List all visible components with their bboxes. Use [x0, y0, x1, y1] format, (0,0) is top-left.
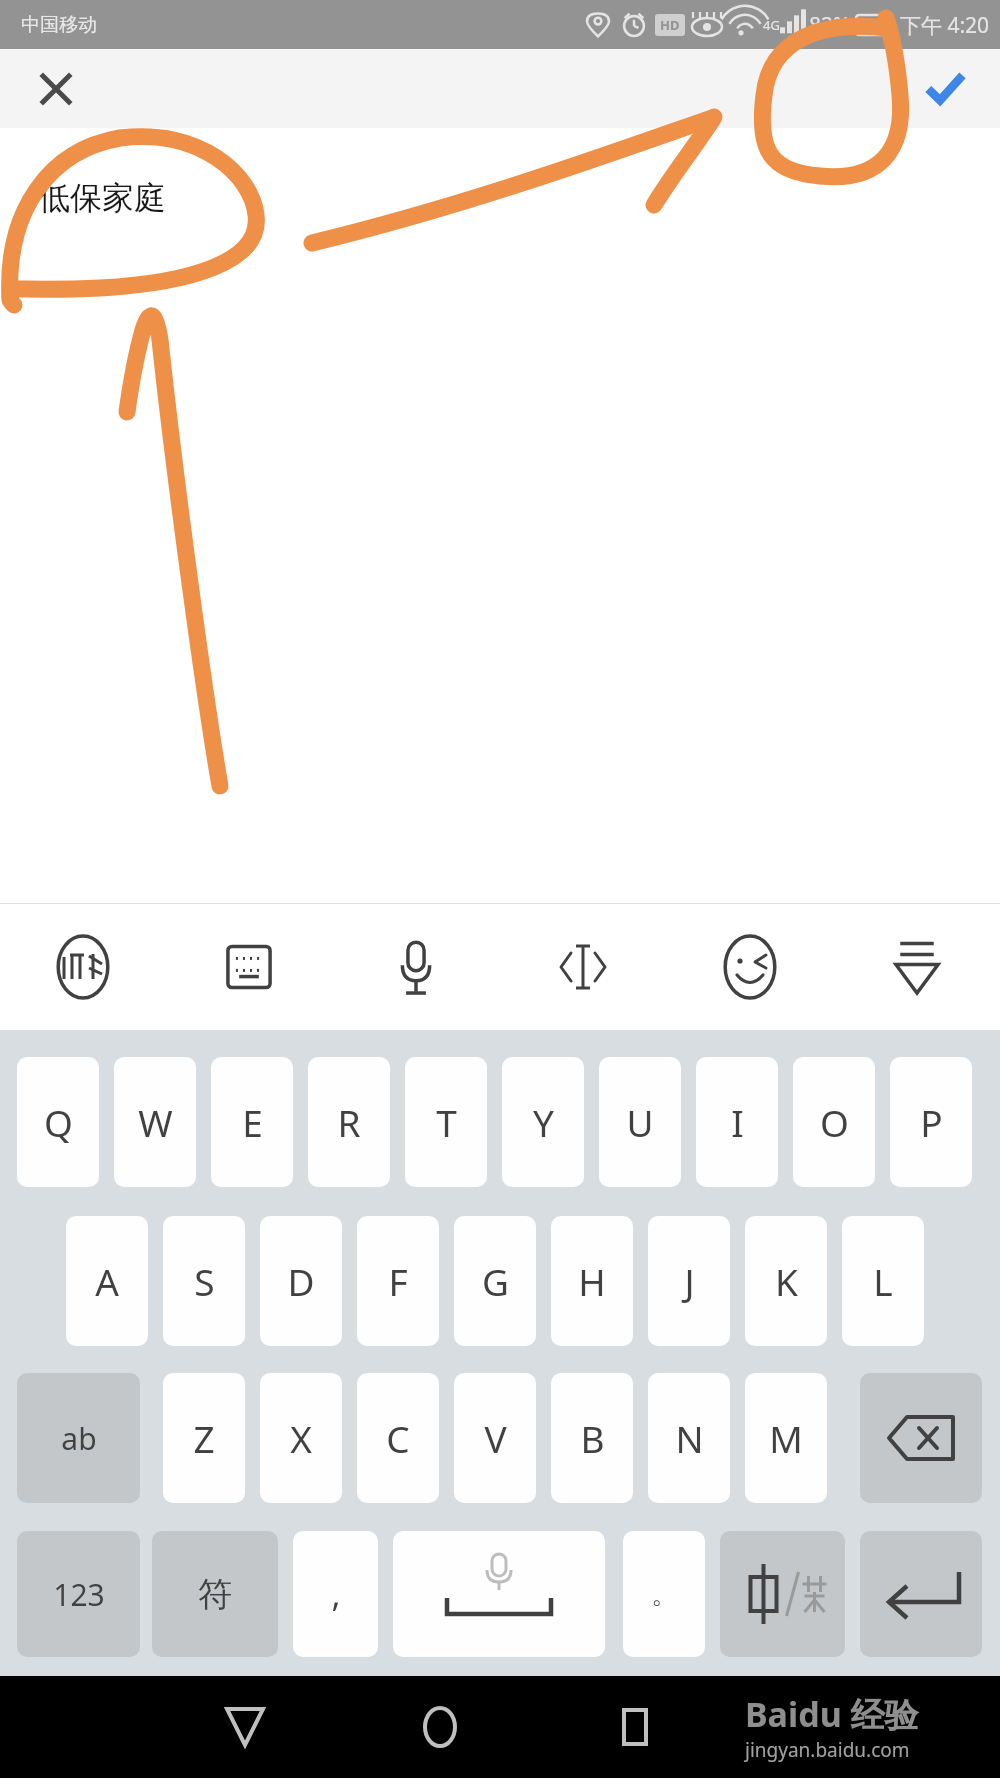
button[interactable]: 符 — [152, 1531, 278, 1657]
button[interactable]: Cursor control — [499, 904, 666, 1030]
staticText: Q — [44, 1097, 73, 1147]
button[interactable]: Z — [163, 1373, 245, 1503]
staticText: T — [436, 1097, 457, 1147]
staticText: U — [626, 1097, 654, 1147]
button[interactable]: N — [648, 1373, 730, 1503]
staticText: F — [388, 1256, 408, 1306]
staticText: J — [684, 1256, 695, 1306]
button[interactable]: R — [308, 1057, 390, 1187]
staticText: H — [578, 1256, 606, 1306]
staticText: C — [386, 1413, 410, 1463]
staticText: I — [731, 1097, 744, 1147]
button[interactable]: Y — [502, 1057, 584, 1187]
button[interactable]: Switch Chinese English — [720, 1531, 845, 1657]
button[interactable]: Input method — [0, 904, 166, 1030]
button[interactable]: Emoji — [666, 904, 833, 1030]
button[interactable]: T — [405, 1057, 487, 1187]
button[interactable]: Recents — [597, 1689, 673, 1765]
staticText: , — [331, 1571, 341, 1617]
staticText: K — [775, 1256, 798, 1306]
staticText: 中国移动 — [21, 13, 97, 37]
staticText: S — [194, 1256, 215, 1306]
button[interactable]: Q — [17, 1057, 99, 1187]
staticText: ab — [61, 1418, 97, 1459]
staticText: 符 — [198, 1573, 232, 1616]
staticText: P — [920, 1097, 943, 1147]
button[interactable]: 。 — [623, 1531, 705, 1657]
button[interactable]: W — [114, 1057, 196, 1187]
staticText: M — [769, 1413, 803, 1463]
staticText: A — [95, 1256, 119, 1306]
staticText: G — [482, 1256, 509, 1306]
staticText: R — [337, 1097, 361, 1147]
staticText: jingyan.baidu.com — [745, 1737, 910, 1763]
button[interactable]: Enter — [860, 1531, 982, 1657]
staticText: N — [675, 1413, 704, 1463]
button[interactable]: H — [551, 1216, 633, 1346]
staticText: B — [580, 1413, 605, 1463]
staticText: E — [242, 1097, 263, 1147]
staticText: W — [138, 1097, 173, 1147]
staticText: X — [290, 1413, 312, 1463]
staticText: 123 — [53, 1574, 105, 1615]
staticText: D — [287, 1256, 315, 1306]
button[interactable]: Home — [402, 1689, 478, 1765]
button[interactable]: 123 — [17, 1531, 140, 1657]
button[interactable]: ab — [17, 1373, 140, 1503]
staticText: Z — [193, 1413, 215, 1463]
button[interactable]: Space — [393, 1531, 605, 1657]
button[interactable]: Backspace — [860, 1373, 982, 1503]
button[interactable]: Keyboard layout — [166, 904, 332, 1030]
button[interactable]: U — [599, 1057, 681, 1187]
button[interactable]: E — [211, 1057, 293, 1187]
button[interactable]: M — [745, 1373, 827, 1503]
button[interactable]: I — [696, 1057, 778, 1187]
button[interactable]: P — [890, 1057, 972, 1187]
button[interactable]: Confirm — [917, 61, 973, 117]
button[interactable]: K — [745, 1216, 827, 1346]
button[interactable]: Back — [207, 1689, 283, 1765]
button[interactable]: Close — [30, 63, 82, 115]
staticText: 。 — [651, 1578, 677, 1611]
button[interactable]: V — [454, 1373, 536, 1503]
button[interactable]: S — [163, 1216, 245, 1346]
button[interactable]: B — [551, 1373, 633, 1503]
staticText: HD — [660, 16, 680, 34]
button[interactable]: 低保家庭 — [38, 178, 166, 218]
staticText: 82% — [809, 11, 851, 40]
button[interactable]: F — [357, 1216, 439, 1346]
staticText: Baidu 经验 — [745, 1691, 919, 1737]
button[interactable]: J — [648, 1216, 730, 1346]
button[interactable]: , — [293, 1531, 378, 1657]
button[interactable]: L — [842, 1216, 924, 1346]
button[interactable]: Hide keyboard — [833, 904, 1000, 1030]
staticText: 下午 4:20 — [900, 11, 990, 40]
staticText: O — [820, 1097, 849, 1147]
staticText: Y — [533, 1097, 554, 1147]
button[interactable]: X — [260, 1373, 342, 1503]
button[interactable]: C — [357, 1373, 439, 1503]
button[interactable]: Voice input — [332, 904, 499, 1030]
staticText: 4G — [763, 16, 780, 34]
button[interactable]: G — [454, 1216, 536, 1346]
button[interactable]: D — [260, 1216, 342, 1346]
staticText: V — [484, 1413, 507, 1463]
button[interactable]: O — [793, 1057, 875, 1187]
staticText: L — [873, 1256, 893, 1306]
button[interactable]: A — [66, 1216, 148, 1346]
